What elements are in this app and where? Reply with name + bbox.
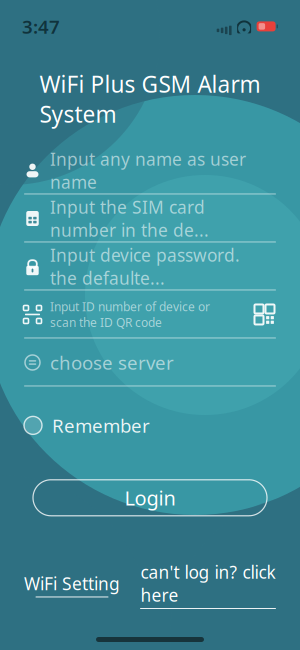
staticText: Input any name as user name: [50, 147, 246, 193]
button[interactable]: Remember: [24, 409, 150, 442]
staticText: WiFi Setting: [24, 572, 120, 595]
button[interactable]: Input any name as user name: [0, 155, 300, 185]
button[interactable]: Input ID number of device or scan the ID…: [0, 299, 300, 329]
button[interactable]: Input the SIM card number in the de...: [0, 203, 300, 233]
button[interactable]: WiFi Setting: [24, 572, 120, 597]
staticText: Input ID number of device or scan the ID…: [50, 299, 210, 330]
button[interactable]: Login: [33, 480, 267, 516]
staticText: Remember: [52, 413, 150, 438]
staticText: choose server: [50, 350, 174, 375]
staticText: Input the SIM card number in the de...: [50, 195, 209, 241]
staticText: Login: [124, 484, 175, 511]
button[interactable]: Input device password. the defaulte...: [0, 251, 300, 281]
staticText: Input device password. the defaulte...: [50, 243, 240, 289]
button[interactable]: can't log in? click here: [140, 560, 276, 609]
staticText: WiFi Plus GSM Alarm System: [39, 69, 260, 129]
button[interactable]: choose server: [0, 347, 300, 377]
staticText: can't log in? click here: [140, 560, 275, 606]
staticText: 3:47: [22, 14, 60, 39]
